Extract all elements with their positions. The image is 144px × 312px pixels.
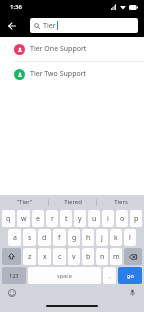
button[interactable]: go [118, 267, 142, 284]
button[interactable]: u [88, 210, 100, 227]
button[interactable]: k [110, 229, 122, 246]
button[interactable]: x [38, 248, 51, 265]
button[interactable]: o [116, 210, 128, 227]
staticText: e [36, 214, 40, 224]
button[interactable]: Tier Two Support [0, 62, 144, 86]
staticText: l [129, 233, 131, 243]
staticText: . [109, 272, 111, 280]
button[interactable]: m [110, 248, 122, 265]
staticText: Tier Two Support [30, 69, 87, 79]
staticText: go [127, 272, 134, 279]
staticText: Tiered [64, 198, 82, 206]
button[interactable]: a [8, 229, 21, 246]
button[interactable]: p [130, 210, 142, 227]
button[interactable]: t [60, 210, 72, 227]
staticText: c [58, 252, 62, 262]
staticText: Tier [43, 21, 56, 31]
staticText: b [86, 252, 91, 262]
button[interactable]: . [103, 267, 116, 284]
button[interactable]: e [32, 210, 44, 227]
staticText: o [120, 214, 125, 224]
staticText: h [86, 233, 91, 243]
staticText: p [134, 214, 139, 224]
button[interactable]: d [38, 229, 51, 246]
button[interactable]: r [46, 210, 58, 227]
button[interactable]: Tier [30, 18, 138, 33]
button[interactable]: Tier One Support [0, 37, 144, 61]
staticText: g [72, 233, 77, 243]
button[interactable]: c [53, 248, 66, 265]
staticText: w [21, 214, 27, 224]
staticText: x [43, 252, 47, 262]
button[interactable]: space [28, 267, 101, 284]
button[interactable]: Shift [2, 248, 21, 265]
staticText: 123 [9, 272, 19, 279]
button[interactable]: f [53, 229, 66, 246]
staticText: u [92, 214, 97, 224]
button[interactable]: Back [4, 18, 20, 34]
staticText: d [42, 233, 47, 243]
button[interactable]: n [96, 248, 108, 265]
staticText: space [57, 272, 72, 279]
staticText: m [113, 252, 120, 262]
staticText: 1:36 [10, 3, 22, 11]
button[interactable]: 123 [2, 267, 26, 284]
staticText: Tiers [114, 198, 128, 206]
staticText: k [114, 233, 118, 243]
staticText: z [28, 252, 32, 262]
button[interactable]: b [82, 248, 94, 265]
button[interactable]: Backspace [124, 248, 142, 265]
staticText: a [13, 233, 17, 243]
staticText: r [51, 214, 54, 224]
button[interactable]: i [102, 210, 114, 227]
button[interactable]: z [23, 248, 36, 265]
button[interactable]: Emoji [6, 287, 17, 298]
button[interactable]: Tiers [97, 195, 144, 209]
button[interactable]: q [2, 210, 15, 227]
button[interactable]: "Tier" [0, 195, 48, 209]
button[interactable]: v [68, 248, 80, 265]
staticText: f [58, 233, 61, 243]
button[interactable]: j [96, 229, 108, 246]
staticText: t [65, 214, 68, 224]
staticText: Tier One Support [30, 44, 87, 54]
button[interactable]: h [82, 229, 94, 246]
staticText: q [6, 214, 11, 224]
button[interactable]: l [124, 229, 136, 246]
button[interactable]: y [74, 210, 86, 227]
button[interactable]: s [23, 229, 36, 246]
staticText: s [28, 233, 32, 243]
button[interactable]: g [68, 229, 80, 246]
button[interactable]: Voice input [127, 287, 138, 298]
staticText: n [100, 252, 105, 262]
staticText: j [101, 233, 103, 243]
button[interactable]: Tiered [49, 195, 96, 209]
staticText: i [107, 214, 109, 224]
staticText: v [72, 252, 76, 262]
button[interactable]: w [17, 210, 30, 227]
staticText: y [78, 214, 82, 224]
staticText: "Tier" [16, 198, 33, 206]
